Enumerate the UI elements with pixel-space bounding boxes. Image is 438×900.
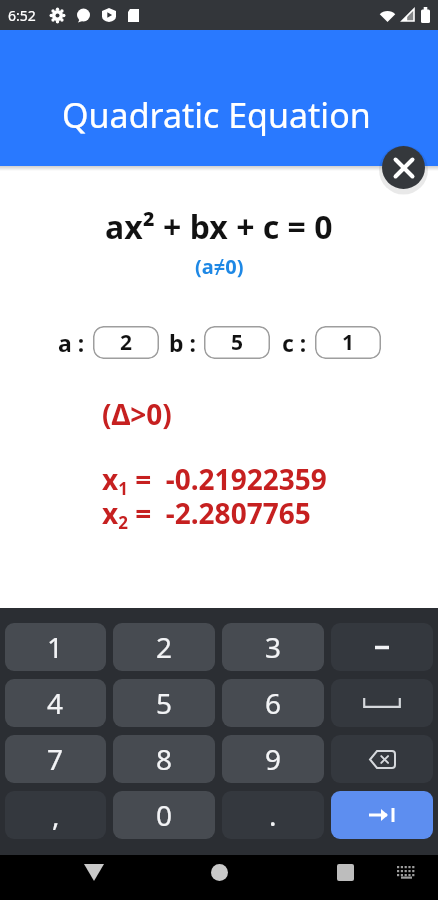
- staticText: 2: [156, 628, 173, 666]
- staticText: 6: [265, 684, 282, 722]
- button[interactable]: ,: [5, 791, 106, 839]
- button[interactable]: [331, 623, 433, 671]
- staticText: c :: [282, 327, 307, 358]
- button[interactable]: 3: [222, 623, 324, 671]
- button[interactable]: 9: [222, 735, 324, 783]
- staticText: ax² + bx + c = 0: [105, 205, 333, 249]
- button[interactable]: 0: [113, 791, 215, 839]
- button[interactable]: 8: [113, 735, 215, 783]
- button[interactable]: [331, 791, 433, 839]
- staticText: b :: [169, 327, 196, 358]
- button[interactable]: 2: [113, 623, 215, 671]
- staticText: Quadratic Equation: [62, 92, 371, 138]
- staticText: (Δ>0): [102, 395, 172, 433]
- button[interactable]: [198, 850, 240, 895]
- staticText: .: [269, 796, 277, 834]
- staticText: 9: [265, 740, 282, 778]
- staticText: 8: [156, 740, 173, 778]
- staticText: 4: [47, 684, 64, 722]
- staticText: 1: [47, 628, 64, 666]
- staticText: x1 = -0.21922359: [102, 460, 327, 500]
- button[interactable]: [388, 850, 424, 895]
- staticText: ,: [52, 796, 60, 834]
- staticText: 0: [156, 796, 173, 834]
- button[interactable]: [331, 679, 433, 727]
- button[interactable]: 5: [204, 326, 270, 359]
- button[interactable]: [382, 146, 425, 189]
- button[interactable]: [331, 735, 433, 783]
- staticText: 2: [120, 328, 133, 357]
- staticText: (a≠0): [195, 253, 244, 280]
- button[interactable]: .: [222, 791, 324, 839]
- button[interactable]: 1: [5, 623, 106, 671]
- staticText: a :: [58, 327, 85, 358]
- button[interactable]: 4: [5, 679, 106, 727]
- button[interactable]: 7: [5, 735, 106, 783]
- staticText: 3: [265, 628, 282, 666]
- staticText: x2 = -2.2807765: [102, 494, 311, 534]
- staticText: 5: [156, 684, 173, 722]
- button[interactable]: 1: [315, 326, 381, 359]
- button[interactable]: [73, 850, 115, 895]
- staticText: 5: [231, 328, 244, 357]
- button[interactable]: 2: [93, 326, 159, 359]
- staticText: 7: [47, 740, 64, 778]
- button[interactable]: [324, 850, 366, 895]
- staticText: 1: [342, 328, 355, 357]
- button[interactable]: 5: [113, 679, 215, 727]
- staticText: 6:52: [8, 6, 36, 25]
- button[interactable]: 6: [222, 679, 324, 727]
